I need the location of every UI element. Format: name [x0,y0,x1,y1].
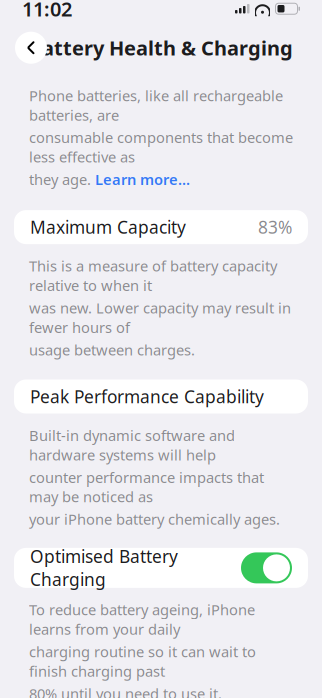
button[interactable]: Learn more... [95,170,190,189]
staticText: Peak Performance Capability [30,385,264,408]
button[interactable]: Optimised Battery Charging [14,548,308,588]
button[interactable]: Back [15,32,47,64]
staticText: consumable components that become less e… [29,128,293,167]
staticText: Battery Health & Charging [29,34,293,61]
staticText: they age. [29,170,91,189]
staticText: was new. Lower capacity may result in fe… [29,298,291,337]
staticText: Phone batteries, like all rechargeable b… [29,86,283,125]
staticText: 80% until you need to use it. [29,684,222,698]
staticText: 83% [258,216,292,239]
staticText: counter performance impacts that may be … [29,467,264,506]
staticText: charging routine so it can wait to finis… [29,642,256,681]
staticText: Optimised Battery Charging [30,545,178,591]
staticText: Learn more... [95,170,190,189]
button[interactable]: Peak Performance Capability [14,379,308,413]
staticText: usage between charges. [29,340,195,359]
button[interactable]: Maximum Capacity [14,210,308,244]
staticText: Maximum Capacity [30,216,186,239]
staticText: To reduce battery ageing, iPhone learns … [29,600,255,639]
staticText: Built-in dynamic software and hardware s… [29,425,235,464]
staticText: your iPhone battery chemically ages. [29,509,280,529]
staticText: This is a measure of battery capacity re… [29,256,277,295]
staticText: 11:02 [22,0,72,22]
